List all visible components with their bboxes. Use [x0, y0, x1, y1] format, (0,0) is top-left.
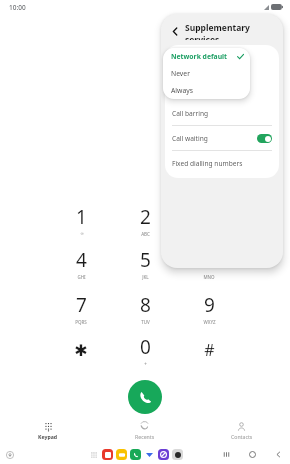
- button[interactable]: App: [130, 449, 141, 460]
- staticText: Fixed dialling numbers: [172, 159, 243, 168]
- button[interactable]: Call waiting: [165, 126, 279, 150]
- staticText: Always: [171, 86, 193, 95]
- button[interactable]: 7: [52, 288, 110, 328]
- staticText: ∞: [80, 231, 84, 236]
- button[interactable]: App: [116, 449, 127, 460]
- staticText: Call waiting: [172, 134, 208, 143]
- button[interactable]: Home: [246, 448, 258, 460]
- button[interactable]: Back: [168, 24, 182, 38]
- button[interactable]: All apps: [88, 449, 99, 460]
- staticText: 0: [140, 334, 151, 360]
- staticText: MNO: [203, 274, 215, 280]
- button[interactable]: 4: [52, 243, 110, 283]
- staticText: Keypad: [38, 433, 58, 440]
- staticText: Never: [171, 69, 190, 78]
- button[interactable]: Keypad: [0, 421, 96, 441]
- button[interactable]: App: [158, 449, 169, 460]
- button[interactable]: App: [172, 449, 183, 460]
- staticText: 2: [140, 204, 151, 230]
- staticText: Supplementary services: [185, 22, 283, 40]
- button[interactable]: 2: [116, 200, 174, 240]
- button[interactable]: ✱: [52, 330, 110, 370]
- staticText: +: [144, 361, 147, 367]
- button[interactable]: Call barring: [165, 101, 279, 125]
- button[interactable]: 1: [52, 200, 110, 240]
- button[interactable]: Downloads: [4, 449, 15, 460]
- button[interactable]: 0: [116, 330, 174, 370]
- staticText: GHI: [77, 274, 86, 280]
- staticText: Recents: [135, 433, 155, 440]
- staticText: ABC: [141, 231, 150, 237]
- staticText: Call barring: [172, 109, 209, 118]
- staticText: ✱: [74, 341, 88, 360]
- staticText: PQRS: [75, 319, 87, 325]
- staticText: 6: [204, 247, 215, 273]
- button[interactable]: 8: [116, 288, 174, 328]
- staticText: 4: [76, 247, 87, 273]
- button[interactable]: Always: [163, 82, 250, 99]
- button[interactable]: Call: [128, 380, 162, 414]
- button[interactable]: Back: [272, 448, 284, 460]
- button[interactable]: Contacts: [193, 421, 290, 441]
- button[interactable]: App: [144, 449, 155, 460]
- staticText: Contacts: [231, 433, 253, 440]
- staticText: WXYZ: [203, 319, 216, 325]
- button[interactable]: Fixed dialling numbers: [165, 151, 279, 175]
- button[interactable]: Recent apps: [220, 448, 232, 460]
- button[interactable]: Call waiting toggle: [257, 134, 272, 143]
- button[interactable]: 5: [116, 243, 174, 283]
- button[interactable]: Network default: [163, 48, 250, 65]
- button[interactable]: 9: [180, 288, 238, 328]
- staticText: 1: [76, 204, 87, 230]
- button[interactable]: Recents: [96, 421, 193, 441]
- staticText: 7: [76, 292, 87, 318]
- staticText: 8: [140, 292, 151, 318]
- staticText: 9: [204, 292, 215, 318]
- button[interactable]: #: [180, 330, 238, 370]
- staticText: JKL: [142, 274, 149, 280]
- button[interactable]: Never: [163, 65, 250, 82]
- staticText: 5: [140, 247, 151, 273]
- button[interactable]: 6: [180, 243, 238, 283]
- staticText: Network default: [171, 52, 228, 61]
- staticText: #: [204, 339, 215, 361]
- staticText: 10:00: [9, 3, 26, 12]
- button[interactable]: App: [102, 449, 113, 460]
- staticText: TUV: [141, 319, 150, 325]
